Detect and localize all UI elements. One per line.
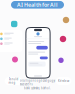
staticText: AI Health for All	[17, 1, 58, 8]
staticText: bárki számára, bárhol.	[24, 86, 51, 90]
button[interactable]: Kérdezz	[56, 77, 71, 85]
button[interactable]: AI Health for All	[11, 1, 64, 9]
staticText: Intelligens egészségügyi asszisztens	[19, 79, 55, 86]
staticText: Tanuld meg	[8, 77, 18, 85]
button[interactable]: Tanuld meg	[5, 77, 22, 85]
staticText: Kérdezz	[58, 79, 69, 83]
